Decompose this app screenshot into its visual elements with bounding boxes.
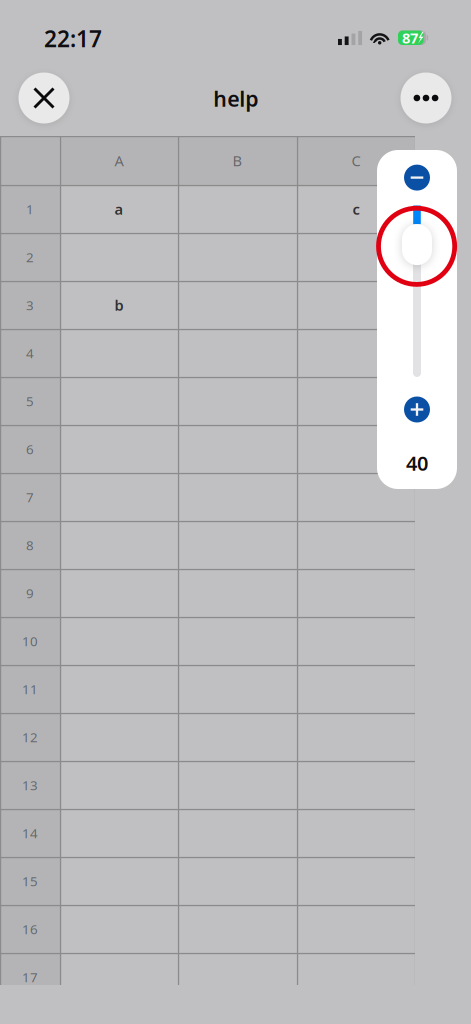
staticText: 1: [26, 200, 34, 218]
staticText: 87: [402, 28, 418, 48]
staticText: c: [352, 199, 359, 219]
staticText: 14: [22, 824, 38, 842]
button[interactable]: More options: [400, 72, 451, 123]
button[interactable]: Increase: [404, 396, 430, 422]
staticText: 22:17: [44, 23, 102, 53]
staticText: 7: [26, 488, 34, 506]
staticText: 8: [26, 536, 34, 554]
staticText: b: [114, 295, 123, 315]
button[interactable]: Close: [18, 72, 69, 123]
staticText: 2: [26, 248, 34, 266]
staticText: A: [114, 151, 123, 170]
staticText: 11: [22, 680, 38, 698]
staticText: 12: [22, 728, 38, 746]
staticText: 15: [22, 872, 38, 890]
button[interactable]: Column width: [392, 195, 442, 385]
staticText: 40: [406, 450, 428, 476]
staticText: a: [114, 199, 123, 219]
staticText: help: [213, 84, 258, 113]
staticText: 9: [26, 584, 34, 602]
staticText: 13: [22, 776, 38, 794]
staticText: 16: [22, 920, 38, 938]
staticText: 6: [26, 440, 34, 458]
staticText: 5: [26, 392, 34, 410]
staticText: 4: [26, 344, 34, 362]
staticText: 17: [22, 968, 38, 986]
button[interactable]: Decrease: [404, 165, 430, 191]
staticText: B: [232, 151, 242, 170]
staticText: 3: [26, 296, 34, 314]
staticText: 10: [22, 632, 38, 650]
staticText: C: [351, 151, 360, 170]
